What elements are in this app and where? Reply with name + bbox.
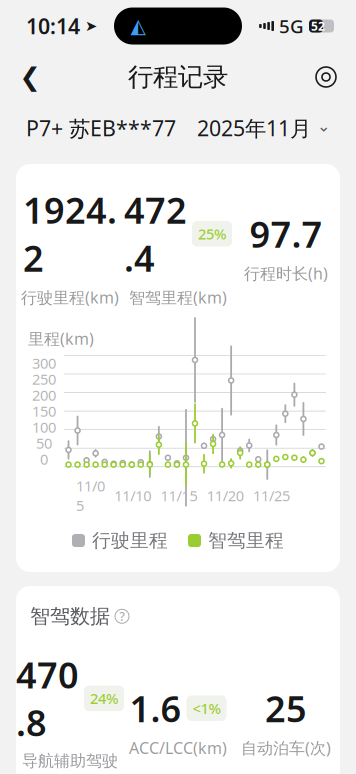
staticText: 470.8 — [16, 651, 79, 746]
staticText: 52 — [311, 18, 325, 34]
button[interactable]: 智驾数据 — [30, 604, 129, 629]
staticText: 25 — [265, 684, 307, 732]
staticText: <1% — [192, 698, 220, 718]
staticText: 1.6 — [129, 684, 181, 732]
staticText: ACC/LCC(km) — [129, 737, 227, 758]
staticText: 里程(km) — [28, 328, 94, 349]
staticText: ⌄ — [317, 117, 330, 135]
staticText: 自动泊车(次) — [241, 737, 331, 758]
staticText: 导航辅助驾驶(km) — [22, 751, 118, 774]
staticText: ➤ — [85, 18, 97, 34]
button[interactable]: 返回 — [8, 55, 52, 99]
staticText: 1924.2 — [23, 186, 117, 282]
staticText: 150 — [32, 401, 56, 421]
staticText: ❮ — [19, 63, 40, 91]
staticText: 行程记录 — [128, 61, 228, 92]
button[interactable]: 设置 — [304, 55, 348, 99]
staticText: 25% — [198, 224, 226, 244]
staticText: 300 — [32, 353, 56, 373]
staticText: 11/20 — [207, 486, 244, 505]
staticText: 0 — [40, 449, 48, 469]
staticText: 行驶里程 — [92, 529, 168, 552]
staticText: 11/15 — [160, 486, 197, 505]
staticText: 24% — [90, 689, 118, 708]
staticText: 11/10 — [114, 486, 151, 505]
staticText: 智驾里程(km) — [129, 287, 227, 308]
staticText: 5G — [279, 14, 304, 38]
staticText: 11/05 — [76, 476, 105, 515]
staticText: 11/25 — [253, 486, 290, 505]
staticText: 行程时长(h) — [244, 263, 328, 284]
staticText: 472.4 — [124, 186, 187, 282]
staticText: 250 — [32, 369, 56, 389]
staticText: 行驶里程(km) — [21, 287, 119, 308]
staticText: 100 — [32, 417, 56, 437]
staticText: ? — [119, 608, 124, 624]
staticText: 智驾里程 — [208, 529, 284, 552]
staticText: P7+ 苏EB***77 — [26, 114, 176, 142]
staticText: 智驾数据 — [30, 604, 110, 629]
staticText: ◭ — [130, 15, 145, 37]
staticText: 50 — [36, 433, 52, 453]
staticText: 200 — [32, 385, 56, 405]
button[interactable]: 2025年11月 — [197, 114, 330, 142]
staticText: 2025年11月 — [197, 114, 311, 142]
staticText: 97.7 — [249, 210, 322, 258]
staticText: 10:14 — [26, 12, 80, 40]
